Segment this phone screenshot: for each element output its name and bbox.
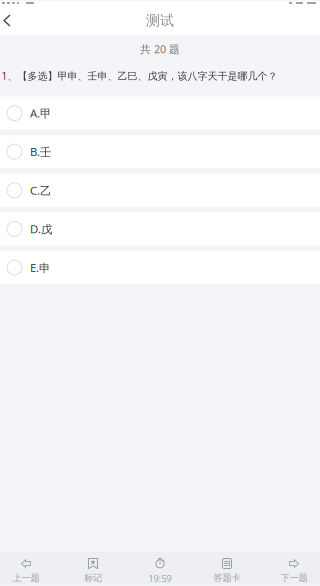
staticText: 共 20 题 bbox=[140, 42, 180, 56]
staticText: C.乙 bbox=[30, 183, 51, 198]
staticText: 上一题 bbox=[12, 572, 39, 584]
staticText: A.甲 bbox=[30, 105, 51, 121]
staticText: E.申 bbox=[30, 260, 50, 275]
staticText: B.壬 bbox=[30, 144, 51, 159]
staticText: 19:59 bbox=[148, 572, 171, 585]
button[interactable]: 下一题 bbox=[268, 552, 320, 585]
staticText: 下一题 bbox=[280, 572, 307, 584]
staticText: 答题卡 bbox=[213, 572, 240, 584]
button[interactable]: D.戊 bbox=[0, 212, 320, 245]
staticText: 1、【多选】甲申、壬申、乙巳、戊寅，该八字天干是哪几个？ bbox=[1, 69, 277, 83]
button[interactable]: E.申 bbox=[0, 251, 320, 284]
button[interactable]: A.甲 bbox=[0, 97, 320, 130]
button[interactable]: Back bbox=[0, 7, 23, 34]
button[interactable]: 标记 bbox=[67, 552, 119, 585]
button[interactable]: 答题卡 bbox=[201, 552, 253, 585]
button[interactable]: 上一题 bbox=[0, 552, 52, 585]
staticText: 标记 bbox=[84, 572, 102, 584]
staticText: D.戊 bbox=[30, 221, 52, 237]
button[interactable]: 19:59 bbox=[134, 552, 186, 585]
staticText: 测试 bbox=[146, 12, 174, 29]
button[interactable]: B.壬 bbox=[0, 135, 320, 168]
button[interactable]: C.乙 bbox=[0, 174, 320, 207]
